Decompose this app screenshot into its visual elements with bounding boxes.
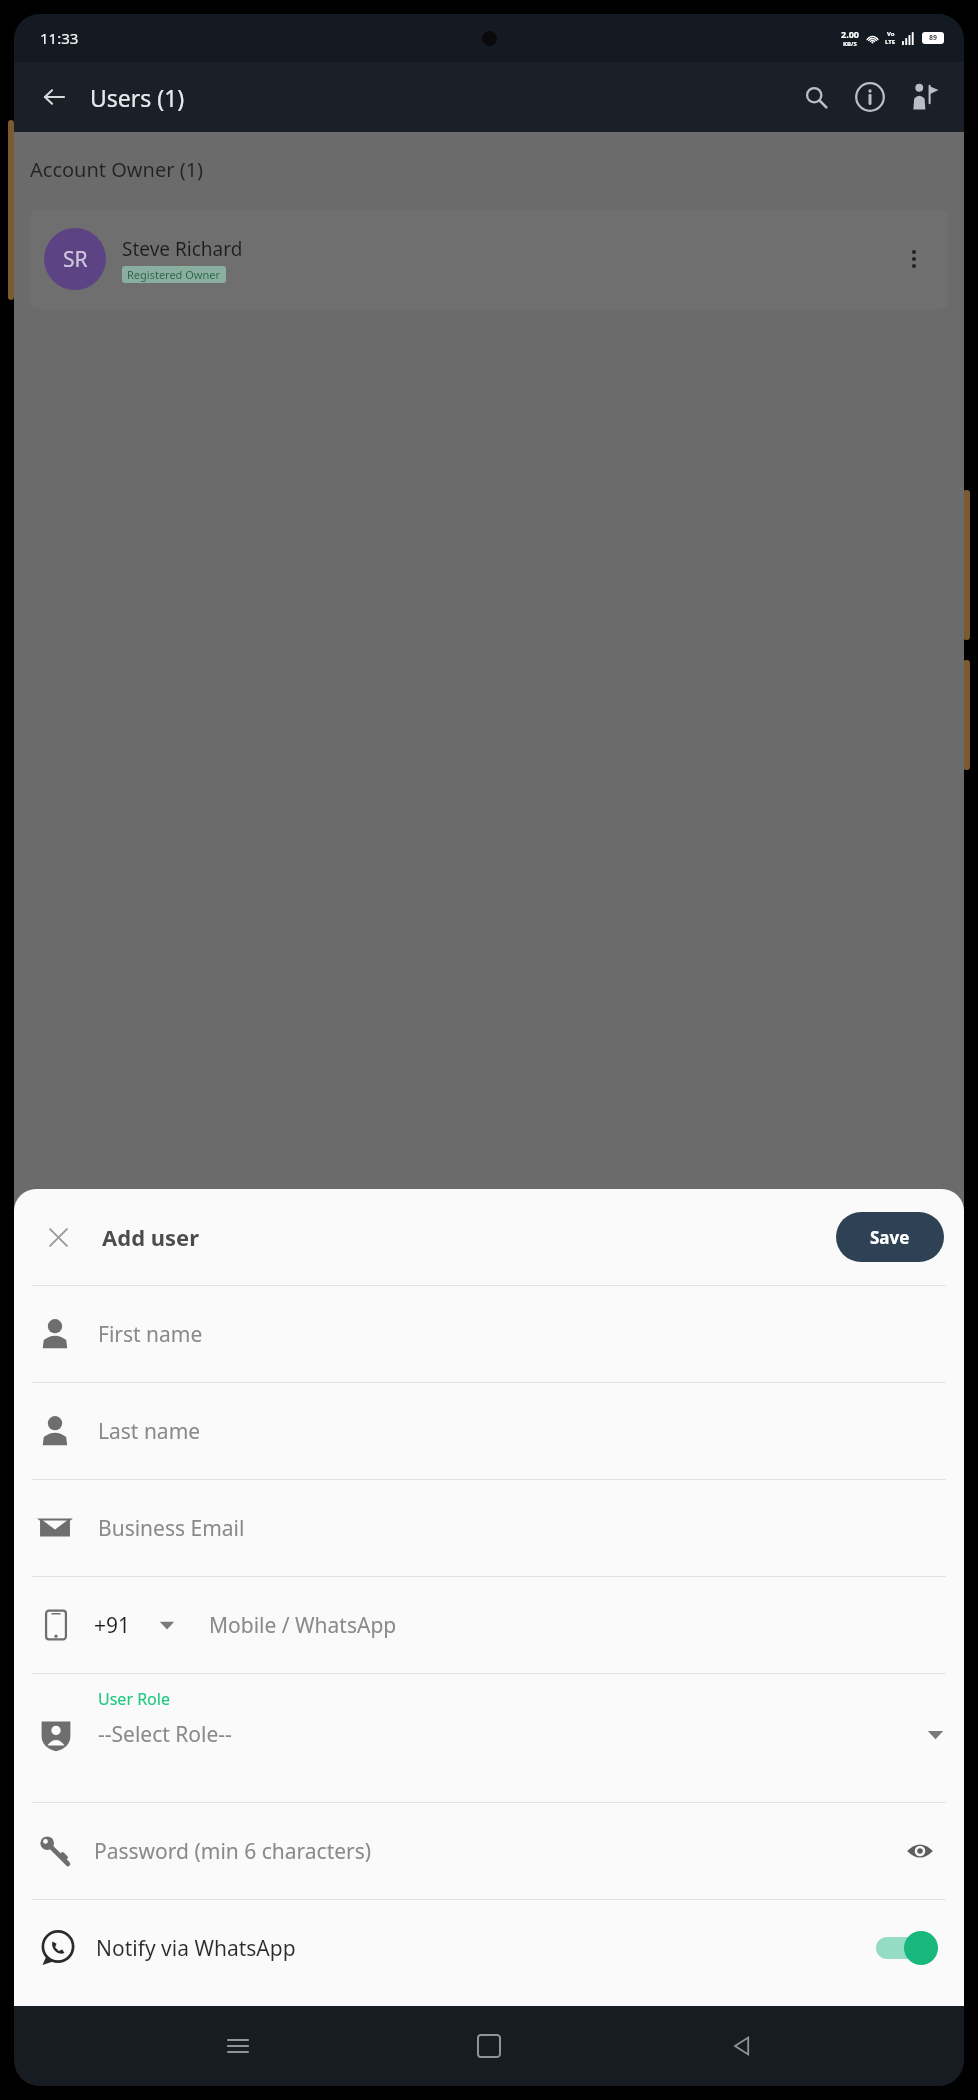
button[interactable]: First name bbox=[14, 1286, 964, 1382]
button[interactable]: Last name bbox=[14, 1383, 964, 1479]
button[interactable]: Recents bbox=[210, 2018, 266, 2074]
button[interactable]: Password (min 6 characters) bbox=[14, 1803, 964, 1899]
staticText: +91 bbox=[94, 1611, 131, 1640]
staticText: Save bbox=[870, 1226, 910, 1249]
staticText: --Select Role-- bbox=[98, 1720, 232, 1749]
staticText: KB/S bbox=[843, 40, 857, 48]
staticText: Mobile / WhatsApp bbox=[209, 1611, 397, 1640]
button[interactable]: User Role bbox=[14, 1674, 964, 1802]
staticText: 89 bbox=[929, 33, 938, 43]
button[interactable]: Search bbox=[794, 75, 838, 119]
staticText: User Role bbox=[98, 1688, 170, 1710]
button[interactable]: Notify via WhatsApp bbox=[14, 1900, 964, 1996]
button[interactable]: More options bbox=[894, 239, 934, 279]
staticText: First name bbox=[98, 1320, 203, 1349]
staticText: Users (1) bbox=[90, 82, 185, 113]
staticText: Add user bbox=[102, 1222, 200, 1252]
staticText: Password (min 6 characters) bbox=[94, 1837, 372, 1866]
button[interactable]: Show password bbox=[898, 1829, 942, 1873]
staticText: Last name bbox=[98, 1417, 201, 1446]
staticText: Business Email bbox=[98, 1514, 245, 1543]
button[interactable]: Notify via WhatsApp toggle bbox=[876, 1931, 940, 1965]
button[interactable]: Business Email bbox=[14, 1480, 964, 1576]
button[interactable]: Close bbox=[36, 1215, 80, 1259]
staticText: 11:33 bbox=[40, 28, 79, 48]
staticText: Steve Richard bbox=[122, 236, 243, 262]
button[interactable]: Add user bbox=[902, 75, 946, 119]
staticText: 2.00 bbox=[841, 28, 859, 40]
button[interactable]: Home bbox=[461, 2018, 517, 2074]
staticText: LTE bbox=[885, 38, 896, 46]
staticText: Vo bbox=[887, 30, 895, 38]
button[interactable]: Back bbox=[713, 2018, 769, 2074]
button[interactable]: +91 bbox=[14, 1577, 964, 1673]
button[interactable]: Save bbox=[836, 1212, 944, 1262]
button[interactable]: SR bbox=[30, 209, 948, 309]
button[interactable]: Information bbox=[848, 75, 892, 119]
staticText: Registered Owner bbox=[127, 267, 221, 282]
staticText: Account Owner (1) bbox=[30, 156, 204, 183]
staticText: SR bbox=[63, 245, 88, 274]
button[interactable]: Back bbox=[32, 75, 76, 119]
staticText: Notify via WhatsApp bbox=[96, 1934, 296, 1963]
